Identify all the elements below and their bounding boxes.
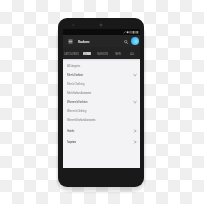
staticText: Men's Clothing xyxy=(67,82,85,86)
staticText: FASHION xyxy=(97,52,108,55)
staticText: Women's Fashion Accessories xyxy=(67,118,96,122)
staticText: Women's Clothing xyxy=(67,109,87,113)
staticText: Men's Fashion xyxy=(67,73,84,77)
button[interactable]: Menu xyxy=(67,38,74,45)
button[interactable]: Women's Fashion Accessories xyxy=(63,115,140,125)
button[interactable]: Women's Fashion xyxy=(63,97,140,106)
staticText: Women's Fashion xyxy=(67,100,88,104)
button[interactable]: FASHION xyxy=(95,47,110,59)
button[interactable]: Search xyxy=(121,37,130,46)
staticText: Surprises xyxy=(67,140,76,144)
button[interactable]: Surprises xyxy=(63,137,140,147)
staticText: HOME xyxy=(83,52,91,55)
button[interactable]: HOME xyxy=(79,47,95,59)
staticText: ALL xyxy=(130,52,135,55)
staticText: CATEGORIES xyxy=(64,52,79,55)
button[interactable]: Women's Clothing xyxy=(63,106,140,115)
button[interactable]: Men's Fashion Accessories xyxy=(63,88,140,97)
button[interactable]: CATEGORIES xyxy=(63,47,79,59)
staticText: NEW xyxy=(115,52,121,55)
button[interactable]: Hotels xyxy=(63,125,140,137)
staticText: Men's Fashion Accessories xyxy=(67,91,91,95)
button[interactable]: All Categories xyxy=(63,61,140,70)
staticText: Hotels xyxy=(67,129,75,133)
button[interactable]: Men's Fashion xyxy=(63,70,140,79)
staticText: Kudoro xyxy=(78,39,90,44)
staticText: All Categories xyxy=(67,64,80,68)
button[interactable]: Men's Clothing xyxy=(63,79,140,88)
button[interactable]: NEW xyxy=(110,47,125,59)
button[interactable]: ALL xyxy=(125,47,140,59)
button[interactable]: Profile xyxy=(131,37,139,45)
